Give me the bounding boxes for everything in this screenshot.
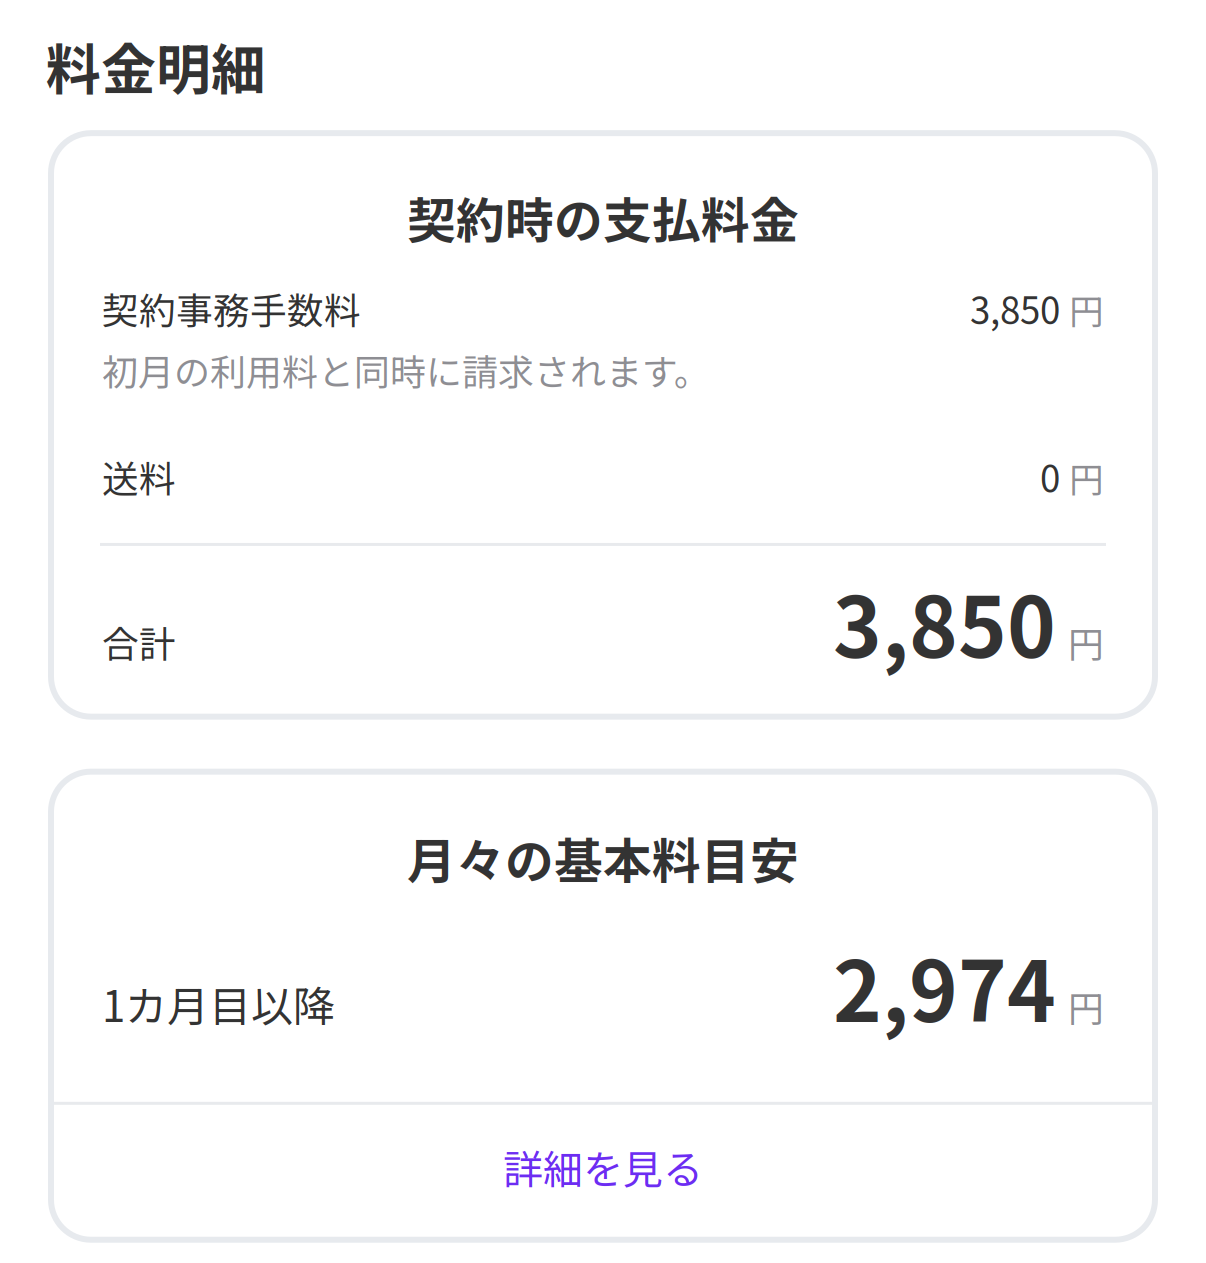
staticText: 2,974 (833, 926, 1056, 1046)
staticText: 0 (1040, 450, 1060, 503)
staticText: 円 (1068, 616, 1104, 668)
staticText: 3,850 (833, 562, 1056, 682)
staticText: 詳細を見る (503, 1138, 703, 1196)
staticText: 3,850 (970, 282, 1060, 335)
staticText: 送料 (102, 450, 176, 503)
staticText: 円 (1069, 452, 1104, 502)
staticText: 契約時の支払料金 (407, 182, 799, 253)
staticText: 合計 (102, 615, 176, 668)
button[interactable]: 詳細を見る (51, 1105, 1155, 1240)
staticText: 月々の基本料目安 (407, 823, 799, 893)
staticText: 円 (1068, 980, 1104, 1032)
staticText: 円 (1069, 284, 1104, 334)
staticText: 契約事務手数料 (102, 282, 361, 335)
staticText: 1カ月目以降 (102, 973, 335, 1034)
staticText: 初月の利用料と同時に請求されます。 (102, 344, 710, 396)
staticText: 料金明細 (46, 26, 266, 105)
